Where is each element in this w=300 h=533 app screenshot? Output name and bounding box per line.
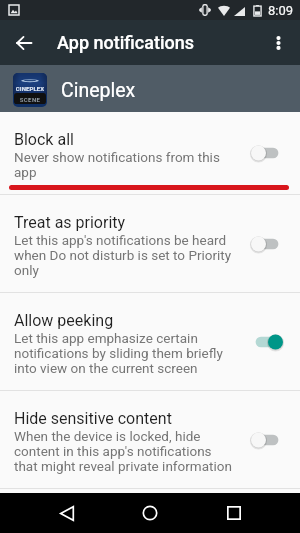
- staticText: Never show notifications from this app: [14, 149, 235, 180]
- staticText: Let this app emphasize certain notificat…: [14, 330, 235, 376]
- staticText: App notifications: [57, 32, 194, 53]
- button[interactable]: Home: [121, 493, 178, 533]
- button[interactable]: Navigate up: [2, 21, 46, 65]
- staticText: Hide sensitive content: [14, 409, 172, 428]
- button[interactable]: Block all: [0, 112, 300, 194]
- staticText: Cineplex: [61, 79, 136, 102]
- button[interactable]: Allow peeking: [0, 293, 300, 390]
- staticText: Let this app's notifications be heard wh…: [14, 232, 235, 278]
- button[interactable]: Treat as priority: [0, 195, 300, 292]
- button[interactable]: More options: [258, 23, 298, 63]
- staticText: SCENE: [13, 96, 47, 103]
- button[interactable]: Recent apps: [205, 493, 262, 533]
- staticText: When the device is locked, hide content …: [14, 428, 235, 474]
- staticText: 8:09: [268, 3, 294, 18]
- staticText: Allow peeking: [14, 311, 114, 330]
- button[interactable]: Back: [39, 493, 95, 533]
- button[interactable]: CINEPLEX: [0, 65, 300, 112]
- staticText: Treat as priority: [14, 213, 126, 232]
- staticText: CINEPLEX: [13, 85, 47, 92]
- staticText: Block all: [14, 130, 74, 149]
- button[interactable]: Hide sensitive content: [0, 391, 300, 488]
